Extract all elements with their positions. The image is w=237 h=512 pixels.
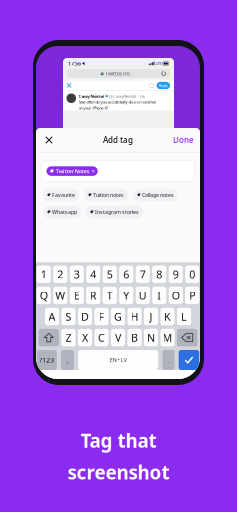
button[interactable]: Collage notes	[133, 189, 178, 201]
staticText: W	[55, 288, 65, 302]
staticText: I	[157, 288, 161, 302]
staticText: R	[90, 288, 97, 302]
button[interactable]: Z	[61, 329, 76, 346]
staticText: 3	[74, 267, 80, 281]
staticText: ,	[66, 356, 68, 364]
staticText: 7	[140, 267, 146, 281]
staticText: F	[98, 309, 104, 324]
button[interactable]: ?123	[37, 350, 57, 370]
staticText: 1	[41, 267, 47, 281]
staticText: 0	[189, 267, 195, 281]
staticText: EN • LV	[110, 356, 127, 364]
button[interactable]: Y	[119, 287, 133, 304]
staticText: L	[181, 309, 187, 324]
button[interactable]: G	[111, 308, 125, 325]
button[interactable]	[177, 329, 197, 346]
staticText: S	[65, 309, 71, 324]
staticText: 5	[107, 267, 113, 281]
staticText: Collage notes	[142, 191, 174, 198]
staticText: LTE	[155, 61, 161, 66]
staticText: 9	[173, 267, 179, 281]
button[interactable]: 6	[119, 266, 133, 283]
staticText: @CaseyNeistat · 13s	[109, 93, 145, 99]
button[interactable]: Whatsapp	[43, 206, 81, 218]
button[interactable]: 1	[37, 266, 51, 283]
staticText: Q	[40, 288, 48, 302]
staticText: V	[115, 330, 121, 345]
staticText: A	[48, 309, 55, 324]
button[interactable]: D	[78, 308, 92, 325]
staticText: T	[107, 288, 113, 302]
button[interactable]: O	[169, 287, 183, 304]
staticText: .	[167, 356, 169, 364]
staticText: H	[130, 309, 138, 324]
button[interactable]: I	[152, 287, 166, 304]
button[interactable]: U	[136, 287, 150, 304]
button[interactable]: 5	[103, 266, 117, 283]
staticText: X	[82, 330, 88, 345]
button[interactable]: 9	[169, 266, 183, 283]
staticText: E	[74, 288, 80, 302]
button[interactable]: 4	[86, 266, 100, 283]
button[interactable]: M	[160, 329, 175, 346]
staticText: Z	[65, 330, 71, 345]
button[interactable]: ,	[61, 350, 74, 370]
button[interactable]: C	[94, 329, 109, 346]
button[interactable]: Q	[37, 287, 51, 304]
staticText: P	[189, 288, 195, 302]
button[interactable]: Instagram stories	[86, 206, 143, 218]
staticText: 8	[156, 267, 162, 281]
staticText: J	[149, 309, 152, 324]
staticText: Twitter, Inc.	[105, 70, 132, 77]
button[interactable]: Favourite	[43, 189, 79, 201]
staticText: how often do you accidentally do a scree…	[78, 99, 155, 105]
staticText: Casey Neistat	[78, 93, 104, 99]
button[interactable]: X	[78, 329, 92, 346]
staticText: N	[147, 330, 155, 345]
staticText: K	[164, 309, 171, 324]
button[interactable]: 0	[185, 266, 199, 283]
button[interactable]: L	[177, 308, 191, 325]
button[interactable]: E	[70, 287, 84, 304]
button[interactable]: EN • LV	[78, 350, 158, 370]
button[interactable]: J	[144, 308, 158, 325]
staticText: 2	[57, 267, 63, 281]
staticText: ?123	[39, 356, 54, 364]
button[interactable]	[179, 350, 199, 370]
button[interactable]: Tuition notes	[84, 189, 128, 201]
button[interactable]	[39, 329, 59, 346]
button[interactable]: S	[61, 308, 76, 325]
staticText: screenshot	[67, 460, 169, 485]
button[interactable]: 3	[70, 266, 84, 283]
staticText: Instagram stories	[95, 208, 139, 215]
staticText: Reply	[159, 83, 168, 88]
button[interactable]: T	[103, 287, 117, 304]
button[interactable]: P	[185, 287, 199, 304]
button[interactable]: Done	[173, 131, 194, 149]
button[interactable]: H	[127, 308, 142, 325]
button[interactable]: V	[111, 329, 125, 346]
staticText: Add tag	[103, 135, 133, 145]
button[interactable]: W	[53, 287, 67, 304]
button[interactable]: F	[94, 308, 109, 325]
button[interactable]: B	[127, 329, 142, 346]
staticText: 17:56	[68, 60, 81, 67]
staticText: Y	[123, 288, 129, 302]
button[interactable]: .	[162, 350, 174, 370]
staticText: on your iPhone X?	[78, 105, 108, 111]
staticText: O	[172, 288, 180, 302]
button[interactable]: A	[45, 308, 59, 325]
button[interactable]: 8	[152, 266, 166, 283]
staticText: Whatsapp	[52, 208, 77, 215]
staticText: Twitter Notes	[56, 168, 90, 175]
staticText: Done	[173, 135, 194, 145]
button[interactable]: N	[144, 329, 158, 346]
staticText: M	[162, 330, 172, 345]
button[interactable]: K	[160, 308, 175, 325]
button[interactable]: Close	[41, 131, 57, 149]
button[interactable]: 7	[136, 266, 150, 283]
staticText: D	[81, 309, 89, 324]
staticText: Tag that	[80, 428, 156, 453]
button[interactable]: 2	[53, 266, 67, 283]
button[interactable]: R	[86, 287, 100, 304]
